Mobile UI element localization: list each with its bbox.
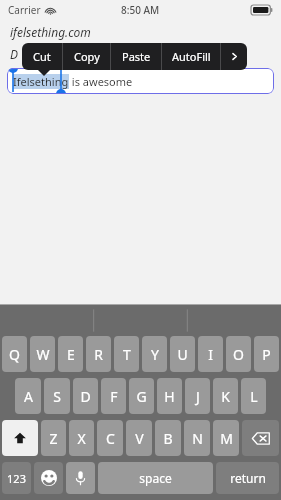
button[interactable]: Backspace: [242, 420, 279, 456]
staticText: Ifelsething: [13, 74, 69, 89]
button[interactable]: C: [97, 420, 123, 456]
button[interactable]: P: [254, 336, 279, 372]
staticText: Paste: [122, 49, 151, 64]
button[interactable]: V: [126, 420, 152, 456]
button[interactable]: E: [58, 336, 83, 372]
staticText: S: [53, 387, 61, 406]
button[interactable]: U: [170, 336, 195, 372]
staticText: D: [80, 387, 91, 406]
button[interactable]: Q: [2, 336, 27, 372]
staticText: A: [24, 387, 33, 406]
staticText: K: [221, 387, 230, 406]
button[interactable]: J: [185, 378, 210, 414]
button[interactable]: I: [198, 336, 223, 372]
button[interactable]: L: [241, 378, 266, 414]
staticText: D: [10, 46, 19, 62]
button[interactable]: K: [213, 378, 238, 414]
button[interactable]: A: [15, 378, 41, 414]
staticText: is awesome: [69, 74, 133, 89]
button[interactable]: N: [184, 420, 210, 456]
button[interactable]: M: [213, 420, 239, 456]
button[interactable]: B: [155, 420, 181, 456]
staticText: R: [94, 345, 103, 364]
button[interactable]: return: [216, 462, 279, 494]
staticText: ifelsething.com: [10, 24, 91, 40]
staticText: H: [164, 387, 175, 406]
staticText: I: [208, 345, 213, 364]
button[interactable]: Dictate: [66, 462, 95, 494]
staticText: W: [36, 345, 50, 364]
button[interactable]: AutoFill: [162, 43, 220, 70]
staticText: L: [250, 387, 258, 406]
staticText: G: [136, 387, 147, 406]
staticText: J: [196, 387, 200, 406]
button[interactable]: More: [221, 43, 247, 70]
staticText: Y: [151, 345, 159, 364]
button[interactable]: Emoji: [34, 462, 63, 494]
staticText: N: [192, 429, 203, 448]
button[interactable]: W: [30, 336, 55, 372]
button[interactable]: Z: [41, 420, 66, 456]
button[interactable]: R: [86, 336, 111, 372]
staticText: B: [163, 429, 173, 448]
staticText: T: [123, 345, 131, 364]
staticText: Cut: [33, 49, 51, 64]
staticText: F: [110, 387, 118, 406]
staticText: Q: [9, 345, 20, 364]
staticText: O: [233, 345, 244, 364]
button[interactable]: X: [69, 420, 94, 456]
button[interactable]: F: [101, 378, 126, 414]
staticText: U: [177, 345, 188, 364]
staticText: X: [77, 429, 86, 448]
staticText: 8:50 AM: [121, 3, 160, 17]
button[interactable]: 123: [2, 462, 31, 494]
staticText: E: [67, 345, 75, 364]
button[interactable]: O: [226, 336, 251, 372]
button[interactable]: Paste: [111, 43, 161, 70]
staticText: V: [135, 429, 144, 448]
button[interactable]: Copy: [63, 43, 110, 70]
staticText: Z: [49, 429, 58, 448]
button[interactable]: Y: [142, 336, 167, 372]
button[interactable]: D: [73, 378, 98, 414]
staticText: M: [220, 429, 233, 448]
button[interactable]: T: [114, 336, 139, 372]
staticText: C: [106, 429, 115, 448]
staticText: space: [139, 470, 172, 486]
staticText: Copy: [74, 49, 100, 64]
staticText: AutoFill: [172, 49, 211, 64]
staticText: 123: [7, 471, 26, 486]
button[interactable]: S: [44, 378, 70, 414]
button[interactable]: Ifelsething: [7, 68, 274, 94]
button[interactable]: Cut: [22, 43, 62, 70]
staticText: return: [230, 470, 266, 486]
button[interactable]: space: [98, 462, 213, 494]
staticText: Carrier: [8, 3, 41, 17]
staticText: P: [262, 345, 271, 364]
button[interactable]: Shift: [2, 420, 38, 456]
button[interactable]: H: [157, 378, 182, 414]
button[interactable]: G: [129, 378, 154, 414]
